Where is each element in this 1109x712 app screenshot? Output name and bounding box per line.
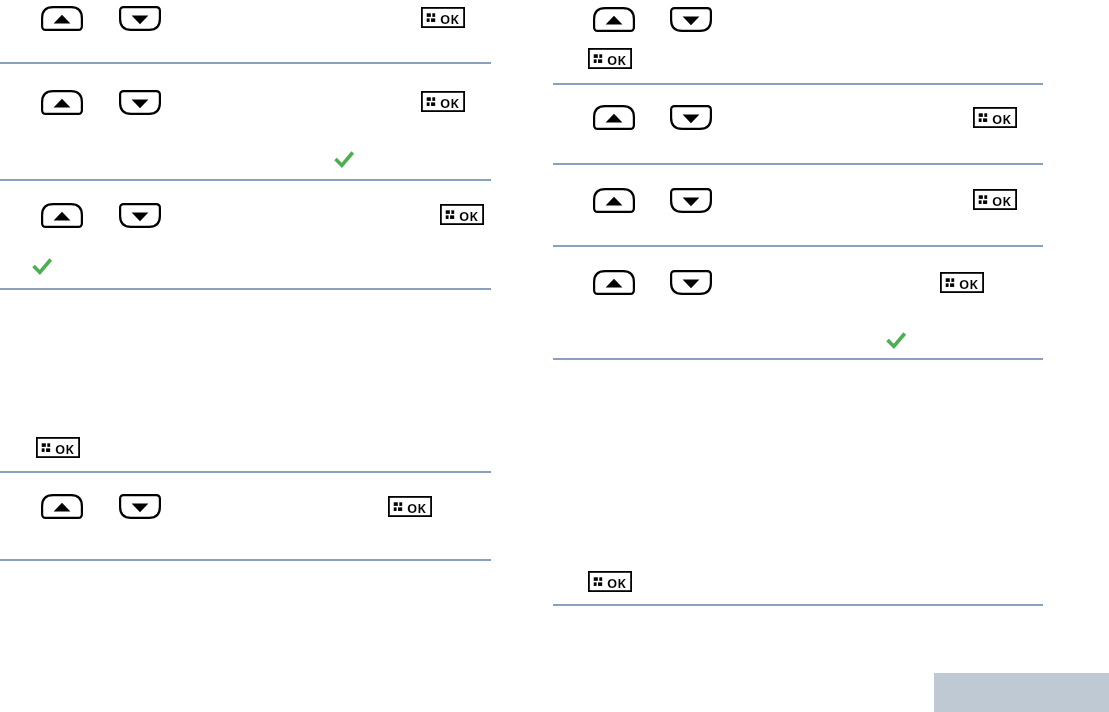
button[interactable]: Scroll down: [670, 188, 712, 213]
button[interactable]: Scroll down: [670, 7, 712, 32]
button[interactable]: Scroll up: [41, 203, 83, 228]
button[interactable]: Scroll up: [41, 494, 83, 519]
button[interactable]: Scroll down: [119, 90, 161, 115]
button[interactable]: Menu OK: [421, 7, 465, 28]
button[interactable]: Scroll up: [41, 90, 83, 115]
button[interactable]: Scroll down: [119, 494, 161, 519]
button[interactable]: Scroll up: [593, 188, 635, 213]
staticText: OK: [407, 499, 426, 517]
staticText: OK: [959, 275, 978, 293]
staticText: OK: [440, 94, 459, 112]
button[interactable]: Scroll down: [670, 270, 712, 295]
button[interactable]: Scroll down: [670, 105, 712, 130]
button[interactable]: Menu OK: [36, 437, 80, 458]
staticText: OK: [992, 110, 1011, 128]
button[interactable]: Menu OK: [421, 91, 465, 112]
staticText: OK: [440, 10, 459, 28]
button[interactable]: Scroll up: [593, 105, 635, 130]
staticText: OK: [607, 51, 626, 69]
staticText: OK: [459, 207, 478, 225]
button[interactable]: Menu OK: [588, 48, 632, 69]
button[interactable]: Scroll down: [119, 6, 161, 31]
button[interactable]: Menu OK: [588, 571, 632, 592]
button[interactable]: Scroll up: [593, 270, 635, 295]
button[interactable]: Menu OK: [940, 272, 984, 293]
button[interactable]: Scroll up: [41, 6, 83, 31]
button[interactable]: Menu OK: [388, 496, 432, 517]
button[interactable]: Menu OK: [973, 107, 1017, 128]
button[interactable]: Scroll down: [119, 203, 161, 228]
button[interactable]: Scroll up: [593, 7, 635, 32]
staticText: OK: [992, 192, 1011, 210]
staticText: OK: [607, 574, 626, 592]
button[interactable]: Menu OK: [973, 189, 1017, 210]
staticText: OK: [55, 440, 74, 458]
button[interactable]: Menu OK: [440, 204, 484, 225]
